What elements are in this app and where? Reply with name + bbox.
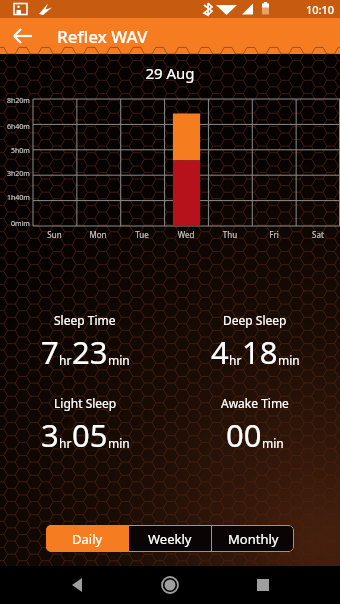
staticText: Wed xyxy=(164,229,208,240)
staticText: hr xyxy=(229,352,242,368)
staticText: Light Sleep xyxy=(54,395,117,411)
staticText: Sat xyxy=(296,229,340,240)
staticText: 23 xyxy=(72,331,108,373)
staticText: 3h20m xyxy=(7,169,30,179)
staticText: Thu xyxy=(208,229,252,240)
staticText: Awake Time xyxy=(221,395,289,411)
staticText: Daily xyxy=(72,530,103,548)
staticText: 3 xyxy=(41,414,59,456)
staticText: 4 xyxy=(211,331,229,373)
staticText: min xyxy=(108,435,130,451)
staticText: 18 xyxy=(242,331,278,373)
button[interactable]: Back xyxy=(10,23,36,49)
button[interactable]: Home xyxy=(155,570,185,600)
button[interactable]: Daily xyxy=(46,525,128,552)
staticText: hr xyxy=(59,435,72,451)
staticText: min xyxy=(262,435,284,451)
staticText: hr xyxy=(59,352,72,368)
staticText: 0mim xyxy=(11,219,30,229)
button[interactable]: Weekly xyxy=(129,525,211,552)
staticText: 29 Aug xyxy=(0,63,340,83)
staticText: min xyxy=(108,352,130,368)
staticText: Fri xyxy=(252,229,296,240)
staticText: 8h20m xyxy=(7,96,30,106)
staticText: Reflex WAV xyxy=(57,25,148,48)
staticText: Tue xyxy=(120,229,164,240)
staticText: 1h40m xyxy=(7,193,30,203)
button[interactable]: Recents xyxy=(248,570,278,600)
staticText: Monthly xyxy=(228,530,279,548)
staticText: 6h40m xyxy=(7,122,30,132)
button[interactable]: Monthly xyxy=(212,525,294,552)
staticText: 7 xyxy=(41,331,59,373)
staticText: 00 xyxy=(226,414,262,456)
staticText: Sun xyxy=(33,229,76,240)
staticText: 10:10 xyxy=(306,2,335,17)
staticText: Weekly xyxy=(148,530,192,548)
staticText: 5h0m xyxy=(11,146,30,156)
button[interactable]: Back xyxy=(62,570,92,600)
staticText: Sleep Time xyxy=(54,312,116,328)
staticText: 05 xyxy=(72,414,108,456)
staticText: Mon xyxy=(76,229,120,240)
staticText: min xyxy=(278,352,300,368)
staticText: Deep Sleep xyxy=(223,312,287,328)
